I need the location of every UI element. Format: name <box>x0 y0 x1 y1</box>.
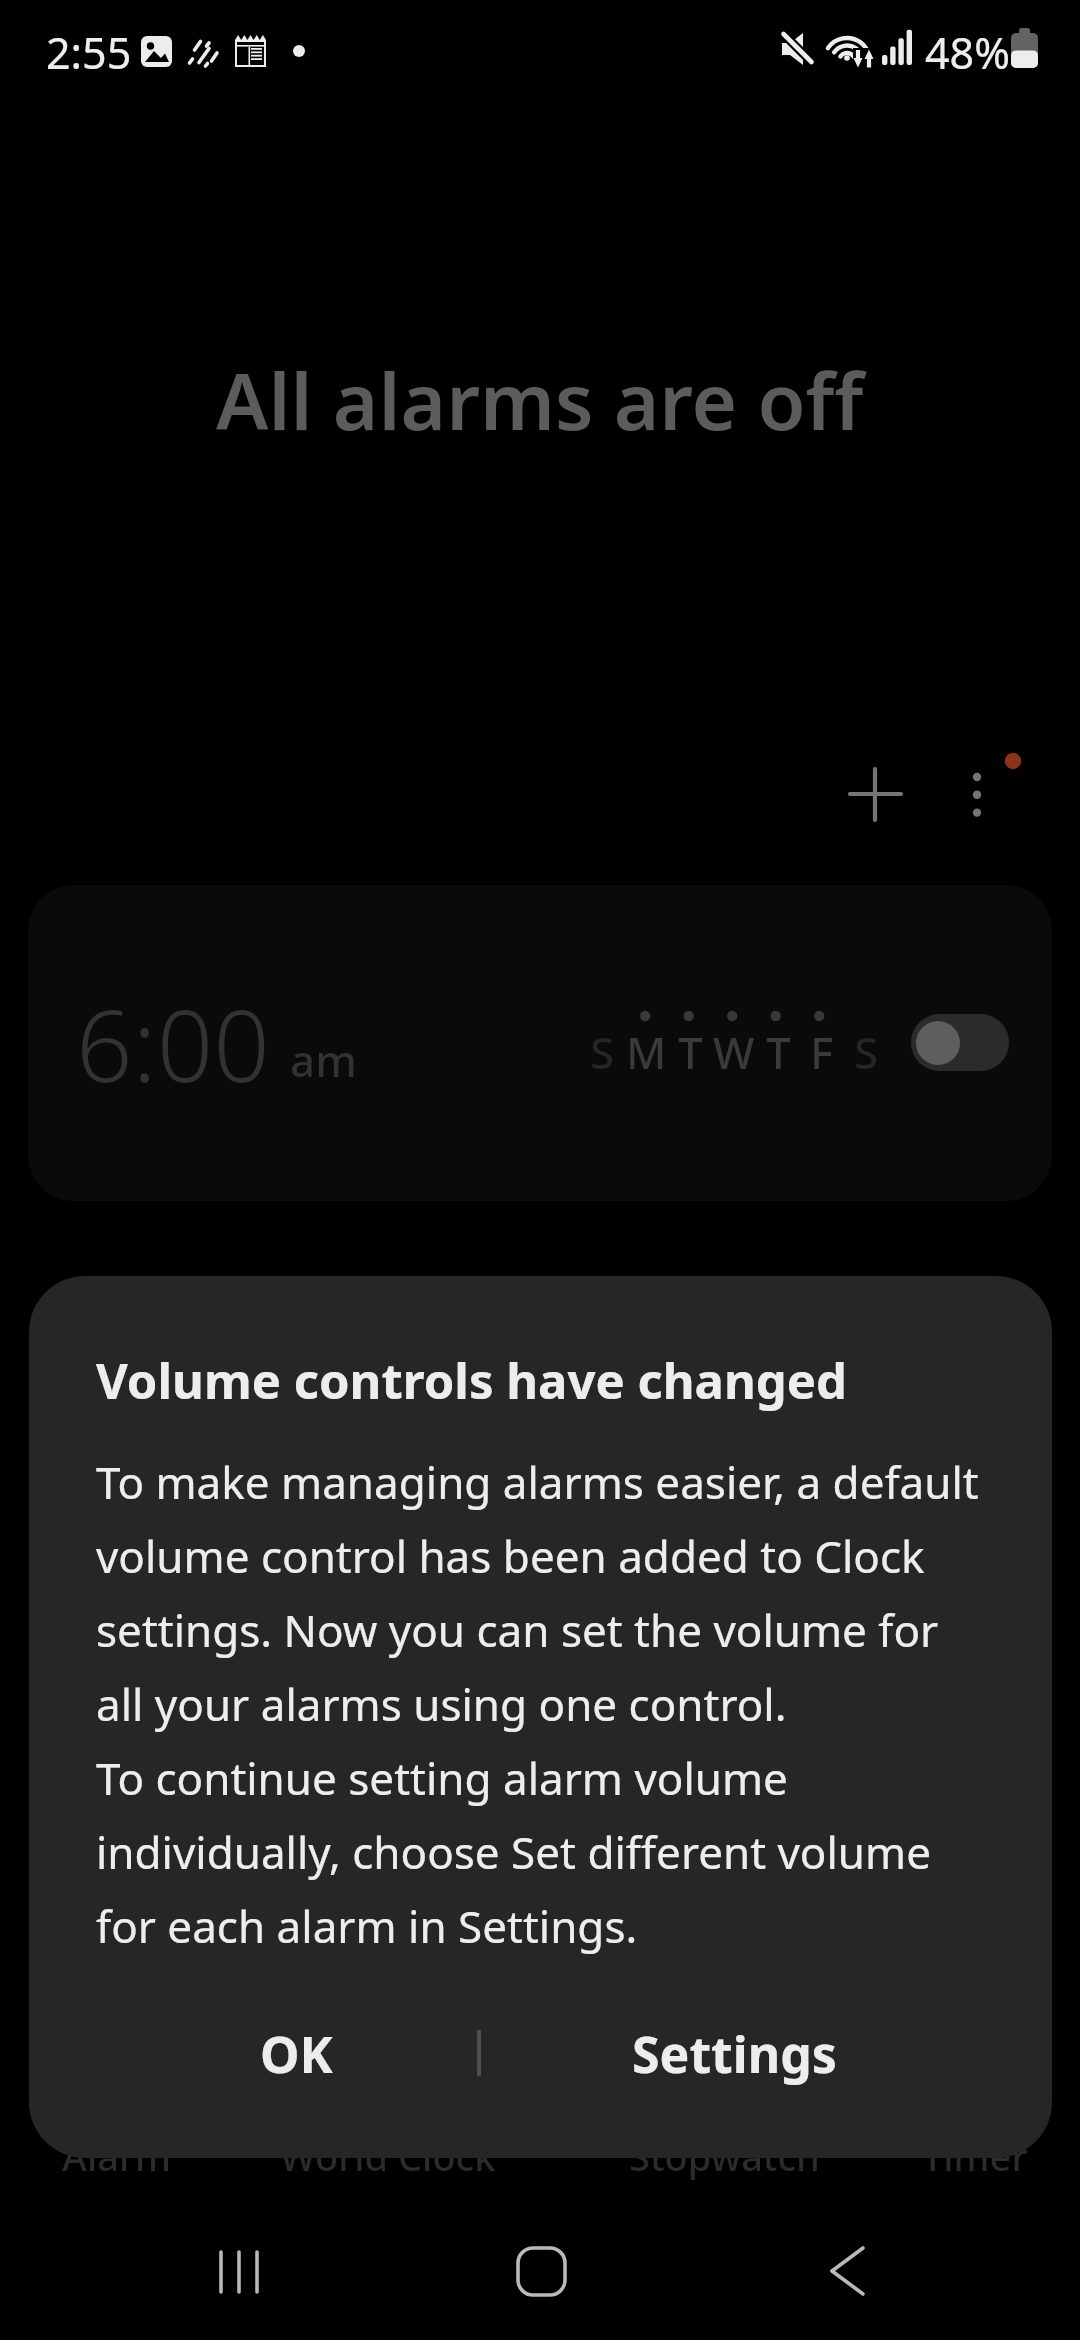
staticText: T <box>678 1022 703 1082</box>
staticText: 2:55 <box>46 23 132 82</box>
staticText: am <box>290 1030 357 1090</box>
staticText: W <box>713 1022 755 1082</box>
staticText: S <box>854 1022 879 1082</box>
staticText: Alarm <box>62 2130 171 2182</box>
staticText: Stopwatch <box>629 2130 820 2182</box>
staticText: All alarms are off <box>216 347 864 453</box>
staticText: F <box>810 1022 834 1082</box>
staticText: S <box>590 1022 615 1082</box>
staticText: M <box>626 1022 667 1082</box>
staticText: To make managing alarms easier, a defaul… <box>96 1452 991 1956</box>
staticText: Settings <box>632 2020 837 2088</box>
staticText: Timer <box>922 2130 1028 2182</box>
staticText: 6:00 <box>76 976 270 1111</box>
button[interactable]: World Clock <box>240 2108 536 2204</box>
button[interactable]: Settings <box>479 1976 1022 2131</box>
staticText: World Clock <box>280 2130 496 2182</box>
button[interactable]: Timer <box>875 2108 1075 2204</box>
button[interactable]: OK <box>59 1976 479 2131</box>
button[interactable]: More options <box>921 738 1033 850</box>
button[interactable]: Add alarm <box>819 738 931 850</box>
button[interactable]: 6:00 <box>28 885 1052 1201</box>
button[interactable]: Back <box>787 2211 907 2331</box>
button[interactable]: Home <box>481 2211 601 2331</box>
button[interactable]: Stopwatch <box>574 2108 874 2204</box>
button[interactable]: Recent apps <box>179 2211 299 2331</box>
staticText: OK <box>260 2020 333 2088</box>
staticText: Volume controls have changed <box>96 1347 847 1414</box>
staticText: 48% <box>925 23 1010 82</box>
button[interactable]: Alarm on or off <box>911 1014 1009 1071</box>
staticText: T <box>766 1022 791 1082</box>
button[interactable]: Alarm <box>0 2108 232 2204</box>
